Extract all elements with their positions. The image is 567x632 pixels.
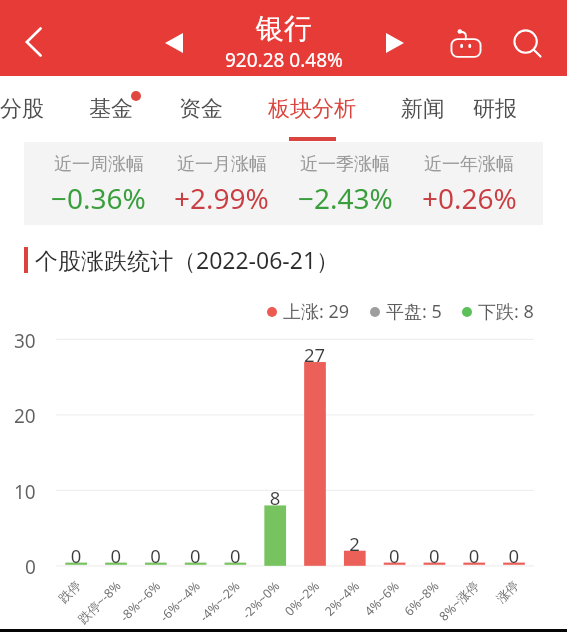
button[interactable]: 研报 (468, 76, 522, 142)
button[interactable]: Search (503, 19, 549, 65)
staticText: +2.99% (174, 179, 269, 217)
staticText: 基金 (89, 95, 133, 123)
button[interactable]: 板块分析 (246, 76, 378, 142)
staticText: 近一月涨幅 (177, 153, 267, 176)
button[interactable]: 资金 (156, 76, 246, 142)
staticText: 近一季涨幅 (300, 153, 390, 176)
staticText: 个股涨跌统计（2022-06-21） (35, 244, 340, 275)
button[interactable]: AI assistant (443, 15, 489, 61)
button[interactable]: Previous sector (153, 21, 197, 65)
button[interactable]: 基金 (66, 76, 156, 142)
staticText: 近一周涨幅 (54, 153, 144, 176)
staticText: 板块分析 (268, 95, 356, 123)
staticText: 新闻 (401, 95, 445, 123)
staticText: 上涨: 29 (283, 299, 350, 324)
button[interactable]: Back (9, 17, 59, 67)
staticText: −2.43% (298, 179, 393, 217)
staticText: −0.36% (51, 179, 146, 217)
button[interactable]: 新闻 (378, 76, 468, 142)
button[interactable]: Next sector (372, 21, 416, 65)
staticText: +0.26% (422, 179, 517, 217)
staticText: 研报 (473, 95, 517, 123)
staticText: 920.28 0.48% (225, 47, 343, 73)
staticText: 成分股 (0, 95, 44, 123)
staticText: 资金 (179, 95, 223, 123)
staticText: 银行 (256, 11, 312, 46)
staticText: 平盘: 5 (386, 299, 442, 324)
button[interactable]: 成分股 (0, 76, 66, 142)
staticText: 近一年涨幅 (424, 153, 514, 176)
staticText: 下跌: 8 (478, 299, 534, 324)
